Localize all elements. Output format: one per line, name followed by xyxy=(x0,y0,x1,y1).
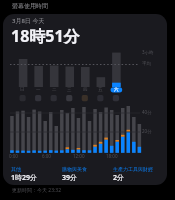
staticText: 2分 xyxy=(113,173,125,183)
staticText: 五 xyxy=(98,87,103,93)
staticText: 四 xyxy=(83,87,88,93)
staticText: 18:00 xyxy=(106,153,118,159)
button[interactable]: 購物與美食 xyxy=(62,166,87,172)
button[interactable]: 其他 xyxy=(11,166,21,172)
staticText: 購物與美食 xyxy=(62,166,87,172)
staticText: 三 xyxy=(67,87,72,93)
staticText: 0:00 xyxy=(9,153,18,159)
staticText: 平均 xyxy=(142,61,151,67)
staticText: 39分 xyxy=(62,173,78,183)
staticText: 更新時間：今天 23:32 xyxy=(12,187,62,194)
staticText: 1時29分 xyxy=(11,173,38,183)
staticText: 螢幕使用時間 xyxy=(12,2,48,10)
staticText: 20分 xyxy=(142,128,152,134)
staticText: 3小時 xyxy=(142,49,154,55)
staticText: 40分 xyxy=(142,109,152,115)
staticText: 3月8日 今天 xyxy=(12,17,45,25)
button[interactable]: 3月8日 今天 xyxy=(3,14,167,185)
button[interactable]: 生產力工具與財經 xyxy=(113,166,153,172)
staticText: 日 xyxy=(20,87,25,93)
staticText: 6:00 xyxy=(42,153,51,159)
staticText: 生產力工具與財經 xyxy=(113,166,153,172)
staticText: 二 xyxy=(52,87,57,93)
staticText: 其他 xyxy=(11,166,21,172)
staticText: 18時51分 xyxy=(11,25,80,47)
staticText: 六 xyxy=(114,87,119,93)
staticText: 12:00 xyxy=(73,153,85,159)
staticText: 一 xyxy=(36,87,41,93)
